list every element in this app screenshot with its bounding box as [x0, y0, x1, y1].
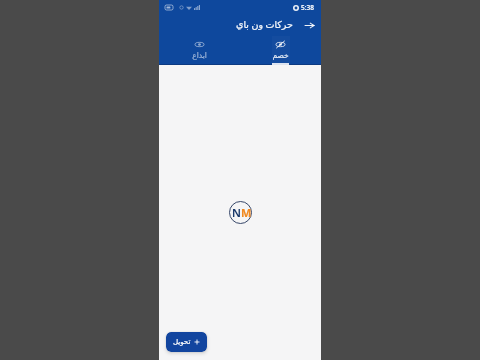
staticText: تحويل [173, 338, 191, 346]
staticText: N [232, 205, 241, 220]
staticText: 5:38 [301, 3, 314, 12]
staticText: خصم [272, 51, 289, 60]
staticText: M [241, 205, 252, 220]
button[interactable]: خصم [240, 36, 321, 65]
staticText: حركات ون باي [236, 18, 293, 31]
staticText: ابداع [192, 51, 207, 60]
button[interactable]: Back [301, 17, 317, 33]
button[interactable]: ابداع [159, 36, 240, 65]
button[interactable]: تحويل [166, 332, 207, 352]
